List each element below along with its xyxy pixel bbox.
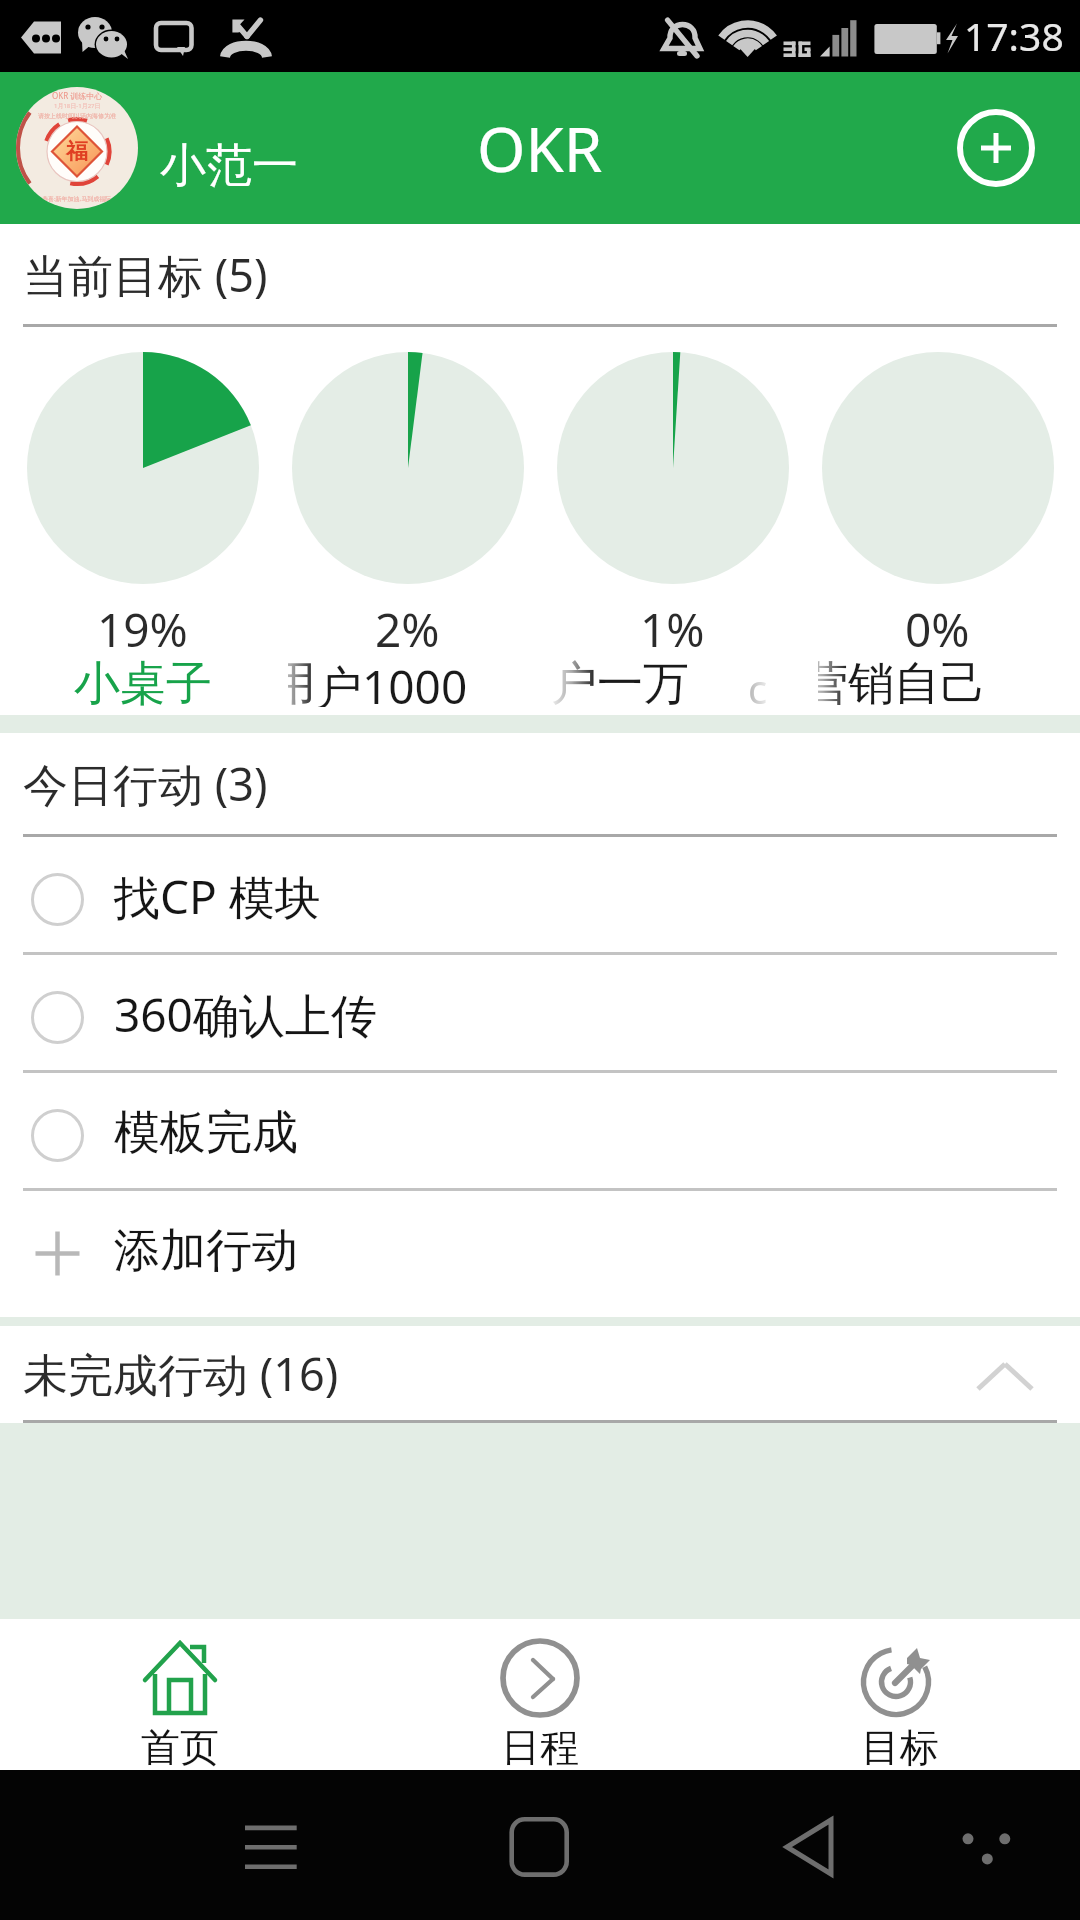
button[interactable]: 2% [275, 327, 540, 715]
staticText: 今日行动 (3) [23, 753, 268, 814]
staticText: 0% [905, 598, 970, 661]
button[interactable]: Schedule [360, 1619, 720, 1770]
staticText: 营 [818, 655, 848, 707]
staticText: OKR 训练中心 [52, 90, 103, 101]
button[interactable]: 添加行动 [0, 1191, 1080, 1306]
button[interactable]: 0% [805, 327, 1070, 715]
staticText: 福 [66, 138, 88, 166]
staticText: 360确认上传 [114, 983, 377, 1046]
staticText: 模板完成 [114, 1104, 298, 1162]
button[interactable]: 360确认上传 [0, 955, 1080, 1073]
staticText: 当前目标 (5) [23, 244, 268, 305]
button[interactable]: Home [0, 1619, 360, 1770]
staticText: 1月18日-1月27日 [54, 102, 101, 110]
staticText: 未完成行动 (16) [23, 1343, 339, 1404]
staticText: 小范一 [160, 137, 298, 195]
staticText: 2% [375, 598, 440, 661]
staticText: c [748, 661, 768, 715]
staticText: 目标 [861, 1723, 939, 1770]
staticText: 用 [288, 655, 316, 707]
other: Goals [862, 1640, 938, 1716]
staticText: 19% [97, 598, 188, 661]
staticText: 户 [553, 655, 597, 707]
other: Schedule [502, 1640, 578, 1716]
button[interactable]: 19% [10, 327, 275, 715]
button[interactable]: Goals [720, 1619, 1080, 1770]
staticText: 销自己 [848, 655, 986, 707]
staticText: 日程 [501, 1723, 579, 1770]
staticText: 恭喜:新年加油,马到成福际 [42, 195, 112, 203]
staticText: 一万 [597, 655, 689, 707]
staticText: 请按上线时间以活内海修为准 [38, 112, 116, 120]
button[interactable]: 1% [540, 327, 805, 715]
button[interactable]: 福 [0, 72, 298, 224]
button[interactable]: 找CP 模块 [0, 837, 1080, 955]
staticText: OKR [477, 106, 603, 190]
staticText: 找CP 模块 [114, 865, 321, 928]
staticText: 1% [640, 598, 705, 661]
button[interactable]: 未完成行动 (16) [0, 1326, 1080, 1423]
button[interactable]: 模板完成 [0, 1073, 1080, 1191]
staticText: 首页 [141, 1723, 219, 1770]
button[interactable]: Add objective [957, 109, 1035, 187]
staticText: 小桌子 [74, 655, 212, 713]
staticText: 17:38 [964, 9, 1064, 62]
staticText: 添加行动 [114, 1222, 298, 1280]
staticText: 户1000 [316, 655, 468, 707]
other: Home [142, 1640, 218, 1716]
